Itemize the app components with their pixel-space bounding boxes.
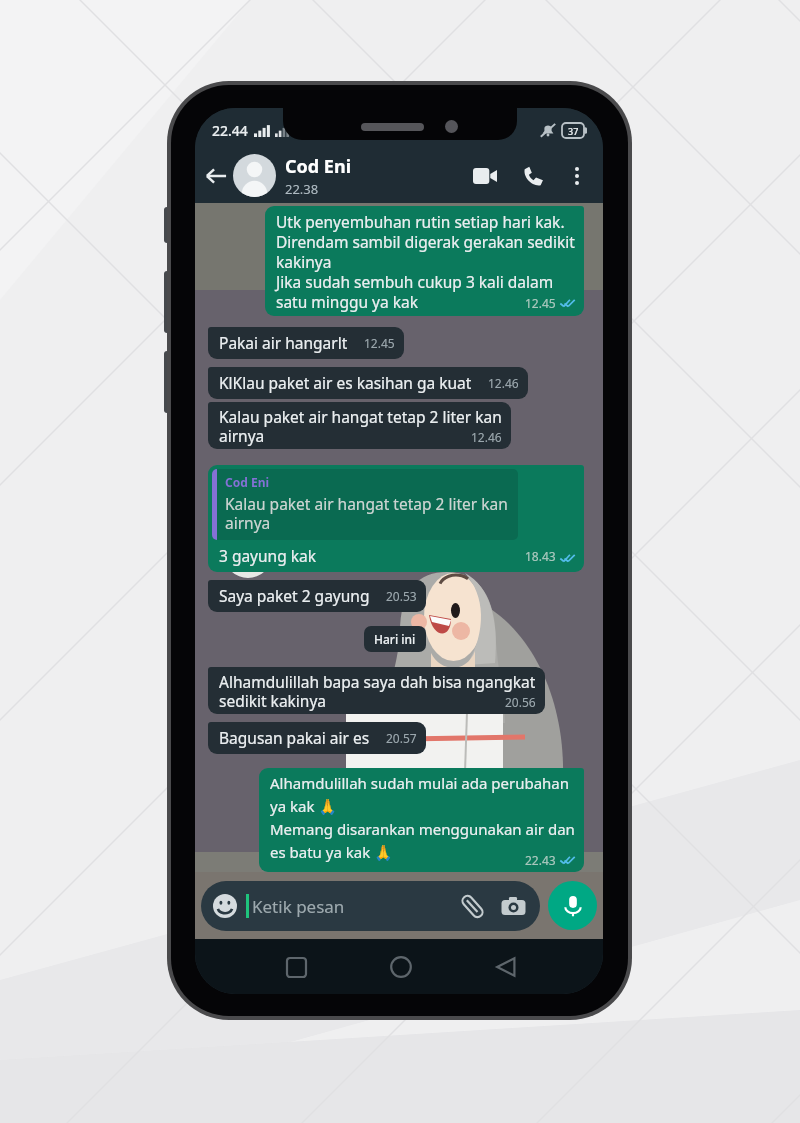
staticText: Bagusan pakai air es: [219, 727, 370, 748]
staticText: 12.45: [525, 295, 556, 311]
staticText: 22.43: [525, 852, 556, 868]
button[interactable]: Emoji: [201, 881, 540, 931]
staticText: 22.44: [212, 121, 248, 140]
button[interactable]: Recents: [276, 947, 316, 987]
button[interactable]: More options: [563, 162, 591, 190]
button[interactable]: Back: [486, 947, 526, 987]
staticText: Ketik pesan: [252, 895, 345, 918]
staticText: Alhamdulillah sudah mulai ada perubahan …: [270, 773, 575, 863]
staticText: 3 gayung kak: [219, 545, 316, 566]
staticText: KlKlau paket air es kasihan ga kuat: [219, 372, 472, 393]
staticText: 12.45: [364, 335, 395, 351]
button[interactable]: Kalau paket air hangat tetap 2 liter kan…: [208, 402, 511, 449]
staticText: Utk penyembuhan rutin setiap hari kak. D…: [276, 211, 575, 312]
staticText: 12.46: [471, 429, 502, 445]
staticText: Hari ini: [374, 631, 416, 647]
button[interactable]: Voice call: [517, 160, 549, 192]
staticText: Cod Eni: [285, 154, 352, 179]
staticText: Kalau paket air hangat tetap 2 liter kan…: [219, 406, 502, 446]
button[interactable]: Saya paket 2 gayung: [208, 580, 426, 612]
button[interactable]: Back: [200, 160, 232, 192]
button[interactable]: Alhamdulillah sudah mulai ada perubahan …: [259, 768, 584, 872]
button[interactable]: Profile photo: [233, 154, 276, 197]
button[interactable]: Cod Eni: [208, 465, 584, 572]
button[interactable]: Home: [381, 947, 421, 987]
button[interactable]: Utk penyembuhan rutin setiap hari kak. D…: [265, 206, 584, 316]
button[interactable]: Pakai air hangarlt: [208, 327, 404, 359]
staticText: Saya paket 2 gayung: [219, 585, 370, 606]
staticText: Cod Eni: [225, 474, 270, 490]
staticText: 37: [568, 125, 579, 137]
button[interactable]: KlKlau paket air es kasihan ga kuat: [208, 367, 528, 399]
staticText: 12.46: [488, 375, 519, 391]
staticText: 20.57: [386, 730, 417, 746]
other: Camera: [501, 894, 526, 919]
staticText: 22.38: [285, 180, 319, 198]
other: Emoji: [213, 894, 237, 918]
button[interactable]: Voice message: [548, 881, 597, 930]
staticText: 20.53: [386, 588, 417, 604]
staticText: 20.56: [505, 694, 536, 710]
staticText: Kalau paket air hangat tetap 2 liter kan…: [225, 493, 508, 533]
button[interactable]: Bagusan pakai air es: [208, 722, 426, 754]
button[interactable]: Alhamdulillah bapa saya dah bisa ngangka…: [208, 667, 545, 714]
staticText: Alhamdulillah bapa saya dah bisa ngangka…: [219, 671, 536, 711]
button[interactable]: Hari ini: [364, 626, 426, 652]
staticText: 18.43: [525, 548, 556, 564]
staticText: Pakai air hangarlt: [219, 332, 348, 353]
button[interactable]: Video call: [469, 160, 501, 192]
other: Attach: [460, 894, 485, 919]
